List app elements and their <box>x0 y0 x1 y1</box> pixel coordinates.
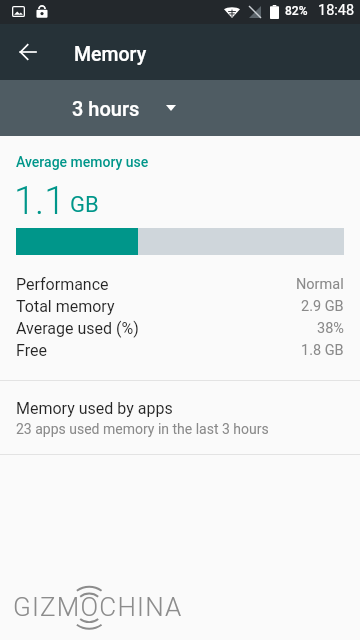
staticText: Memory used by apps <box>16 399 173 418</box>
staticText: Average used (%) <box>16 319 139 338</box>
staticText: 1.8 GB <box>301 342 344 359</box>
staticText: 23 apps used memory in the last 3 hours <box>16 421 269 437</box>
button[interactable]: Navigate up <box>0 24 56 80</box>
staticText: 2.9 GB <box>301 298 344 315</box>
staticText: GB <box>70 192 99 218</box>
staticText: Normal <box>296 276 344 293</box>
staticText: 18:48 <box>318 2 355 19</box>
button[interactable]: 3 hours <box>56 80 192 136</box>
button[interactable]: Memory used by apps <box>0 381 360 454</box>
staticText: Total memory <box>16 297 115 316</box>
staticText: 3 hours <box>72 97 140 120</box>
staticText: 82% <box>285 4 308 18</box>
staticText: Free <box>16 341 47 360</box>
staticText: Memory <box>74 43 147 66</box>
staticText: GIZMOCHINA <box>13 592 183 622</box>
staticText: 1.1 <box>14 179 66 224</box>
staticText: 38% <box>317 320 344 337</box>
staticText: Average memory use <box>16 154 149 170</box>
staticText: Performance <box>16 275 109 294</box>
